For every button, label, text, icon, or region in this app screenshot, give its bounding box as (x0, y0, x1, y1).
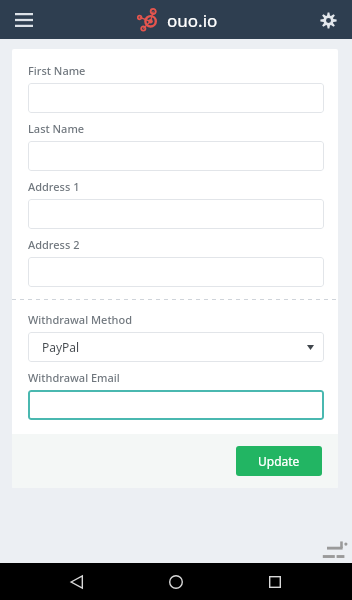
button[interactable]: Text input field (28, 390, 324, 420)
staticText: PayPal (42, 339, 80, 355)
staticText: Update (258, 453, 300, 469)
button[interactable]: Update (236, 446, 322, 476)
staticText: First Name (28, 63, 86, 78)
staticText: Withdrawal Email (28, 370, 120, 385)
button[interactable]: Text input field (28, 83, 324, 113)
staticText: Address 2 (28, 237, 80, 252)
button[interactable]: Text input field (28, 257, 324, 287)
staticText: Last Name (28, 121, 85, 136)
button[interactable]: Text input field (28, 141, 324, 171)
staticText: ouo.io (167, 9, 218, 32)
staticText: Withdrawal Method (28, 312, 133, 327)
button[interactable]: Text input field (28, 199, 324, 229)
button[interactable]: Back (55, 563, 99, 600)
button[interactable]: Open navigation menu (8, 4, 40, 36)
button[interactable]: Settings (312, 4, 344, 36)
button[interactable]: PayPal (28, 332, 324, 362)
button[interactable]: Home (154, 563, 198, 600)
staticText: Address 1 (28, 179, 80, 194)
button[interactable]: Recent apps (253, 563, 297, 600)
